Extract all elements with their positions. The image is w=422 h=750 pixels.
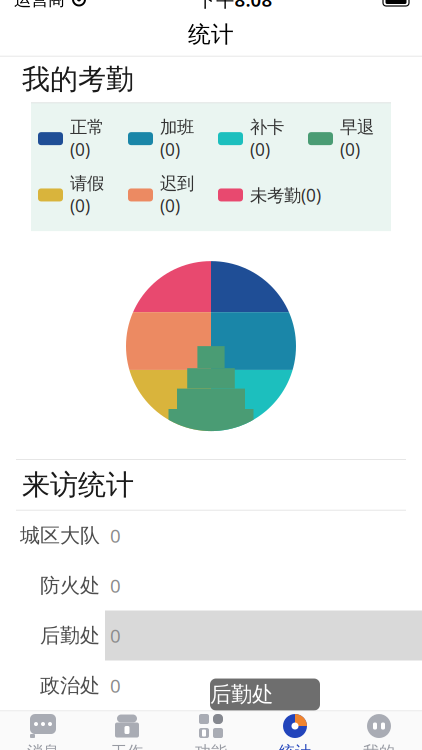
button[interactable]: 统计 (253, 711, 337, 750)
button[interactable]: 后勤处 (0, 610, 422, 660)
staticText: 城区大队 (20, 523, 100, 548)
staticText: 我的考勤 (22, 62, 134, 97)
staticText: 未考勤(0) (250, 183, 321, 206)
button[interactable]: 功能 (169, 711, 253, 750)
staticText: 政治处 (40, 673, 100, 698)
staticText: 0 (110, 673, 121, 698)
staticText: 统计 (188, 21, 234, 48)
button[interactable]: 城区大队 (0, 510, 422, 560)
button[interactable]: 消息 (1, 711, 85, 750)
button[interactable]: 防火处 (0, 560, 422, 610)
button[interactable]: 工作 (85, 711, 169, 750)
staticText: 运营商 (14, 0, 65, 10)
button[interactable]: 我的 (337, 711, 421, 750)
staticText: 加班(0) (160, 116, 194, 161)
button[interactable]: 政治处 (0, 660, 422, 710)
staticText: 消息 (27, 742, 59, 750)
staticText: 防火处 (40, 573, 100, 598)
staticText: 0 (110, 573, 121, 598)
staticText: 来访统计 (22, 468, 134, 502)
staticText: 请假(0) (70, 173, 104, 217)
staticText: 0 (110, 523, 121, 548)
staticText: 0 (110, 623, 121, 648)
staticText: 迟到(0) (160, 173, 194, 217)
staticText: 后勤处 (40, 623, 100, 648)
staticText: 后勤处 (210, 681, 273, 708)
staticText: 工作 (111, 742, 143, 750)
staticText: 我的 (363, 742, 395, 750)
staticText: 下午8:08 (196, 0, 272, 12)
staticText: 补卡(0) (250, 116, 284, 161)
staticText: 正常(0) (70, 116, 104, 161)
staticText: 统计 (279, 742, 311, 750)
staticText: 功能 (195, 742, 227, 750)
staticText: 早退(0) (340, 116, 374, 161)
